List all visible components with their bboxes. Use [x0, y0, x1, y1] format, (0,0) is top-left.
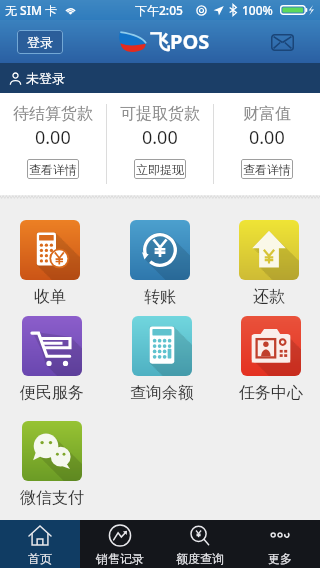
- button[interactable]: 查看详情: [241, 159, 293, 179]
- staticText: 无 SIM 卡: [5, 2, 58, 18]
- staticText: 任务中心: [239, 383, 303, 403]
- staticText: 未登录: [26, 70, 65, 86]
- staticText: 便民服务: [20, 383, 84, 403]
- staticText: 额度查询: [176, 551, 224, 566]
- staticText: 100%: [242, 2, 273, 18]
- staticText: 0.00: [35, 125, 71, 150]
- staticText: 登录: [27, 34, 53, 50]
- button[interactable]: 查询余额: [130, 316, 194, 403]
- staticText: 立即提现: [136, 162, 184, 177]
- staticText: 微信支付: [20, 488, 84, 508]
- staticText: 财富值: [243, 104, 291, 124]
- staticText: 下午2:05: [135, 2, 183, 18]
- staticText: 收单: [34, 287, 66, 307]
- staticText: 转账: [144, 287, 176, 307]
- staticText: 可提取货款: [120, 104, 200, 124]
- staticText: 待结算货款: [13, 104, 93, 124]
- staticText: 0.00: [142, 125, 178, 150]
- button[interactable]: 未登录: [0, 63, 320, 93]
- button[interactable]: 首页: [0, 520, 80, 568]
- button[interactable]: 额度查询: [160, 520, 240, 568]
- button[interactable]: 任务中心: [239, 316, 303, 403]
- button[interactable]: 登录: [17, 30, 63, 54]
- staticText: 更多: [268, 551, 292, 566]
- button[interactable]: Messages: [267, 27, 297, 57]
- button[interactable]: 还款: [239, 220, 299, 307]
- button[interactable]: 更多: [240, 520, 320, 568]
- button[interactable]: 立即提现: [134, 159, 186, 179]
- staticText: 查看详情: [243, 162, 291, 177]
- staticText: 首页: [28, 551, 52, 566]
- staticText: 查询余额: [130, 383, 194, 403]
- button[interactable]: 微信支付: [20, 421, 84, 508]
- staticText: 查看详情: [29, 162, 77, 177]
- button[interactable]: 转账: [130, 220, 190, 307]
- button[interactable]: 收单: [20, 220, 80, 307]
- staticText: 0.00: [249, 125, 285, 150]
- staticText: 还款: [253, 287, 285, 307]
- button[interactable]: 销售记录: [80, 520, 160, 568]
- staticText: 销售记录: [96, 551, 144, 566]
- button[interactable]: 便民服务: [20, 316, 84, 403]
- staticText: 飞POS: [150, 28, 210, 55]
- button[interactable]: 查看详情: [27, 159, 79, 179]
